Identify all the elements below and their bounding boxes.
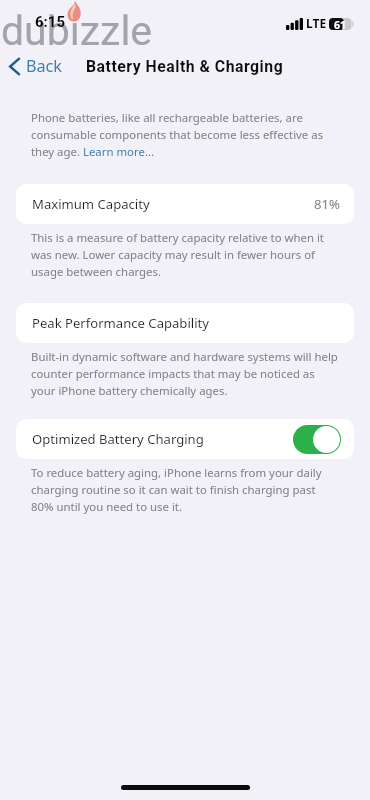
button[interactable]: Optimized Battery Charging toggle [293,425,341,454]
button[interactable]: Maximum Capacity [16,184,354,224]
staticText: 81% [314,195,340,213]
staticText: LTE [306,15,327,31]
staticText: 6:15 [35,13,66,31]
staticText: Battery Health & Charging [86,57,284,76]
staticText: Back [26,55,63,77]
button[interactable]: Optimized Battery Charging [16,419,354,459]
staticText: This is a measure of battery capacity re… [31,230,339,279]
staticText: To reduce battery aging, iPhone learns f… [31,465,339,514]
staticText: 61 [334,18,347,30]
button[interactable]: Peak Performance Capability [16,303,354,343]
staticText: Built-in dynamic software and hardware s… [31,349,339,398]
staticText: Maximum Capacity [32,195,150,213]
staticText: dubizzle [1,7,153,55]
button[interactable]: Back [0,52,71,80]
staticText: Peak Performance Capability [32,314,209,332]
staticText: Optimized Battery Charging [32,430,204,448]
staticText: Phone batteries, like all rechargeable b… [31,110,339,159]
